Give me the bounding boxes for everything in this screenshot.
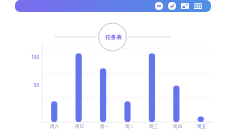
- staticText: 任务表: [105, 34, 122, 41]
- staticText: 周日: [75, 124, 84, 130]
- button[interactable]: 周三: [141, 124, 165, 130]
- staticText: 100: [31, 54, 39, 60]
- button[interactable]: 周日: [67, 124, 92, 130]
- button[interactable]: 周五: [189, 124, 213, 130]
- staticText: 周五: [197, 124, 206, 130]
- staticText: 周四: [173, 124, 182, 130]
- button[interactable]: 周一: [92, 124, 117, 130]
- button[interactable]: 周二: [117, 124, 141, 130]
- button[interactable]: Statistics: [194, 2, 202, 10]
- button[interactable]: Remove: [155, 2, 163, 10]
- staticText: 50: [33, 82, 39, 88]
- button[interactable]: Image: [181, 2, 189, 10]
- button[interactable]: Remove: [15, 0, 211, 12]
- staticText: 周一: [100, 124, 109, 130]
- button[interactable]: Confirm: [168, 2, 176, 10]
- staticText: 周二: [125, 124, 134, 130]
- button[interactable]: 任务表: [100, 26, 126, 48]
- button[interactable]: 周六: [42, 124, 67, 130]
- staticText: 周三: [149, 124, 158, 130]
- button[interactable]: 周四: [165, 124, 189, 130]
- staticText: 周六: [50, 124, 59, 130]
